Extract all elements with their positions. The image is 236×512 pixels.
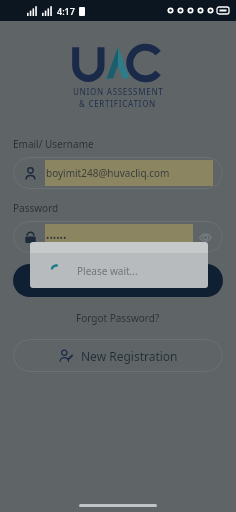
staticText: Forgot Password? — [76, 311, 160, 325]
staticText: Login — [104, 273, 133, 288]
staticText: & CERTIFICATION — [79, 98, 157, 109]
button[interactable]: New Registration — [13, 339, 223, 372]
button[interactable]: Show password — [197, 229, 213, 245]
button[interactable]: boyimit248@huvacliq.com — [13, 157, 223, 189]
button[interactable]: Login — [13, 264, 223, 297]
staticText: New Registration — [81, 348, 178, 364]
button[interactable]: Forgot Password? — [71, 309, 165, 327]
staticText: Please wait... — [77, 264, 138, 278]
button[interactable]: •••••• — [13, 221, 223, 253]
staticText: Password — [13, 201, 59, 215]
staticText: boyimit248@huvacliq.com — [46, 166, 170, 180]
staticText: UNION ASSESSMENT — [73, 86, 164, 97]
staticText: •••••• — [46, 231, 67, 243]
staticText: Email/ Username — [13, 137, 94, 151]
staticText: 4:17 — [57, 5, 75, 17]
